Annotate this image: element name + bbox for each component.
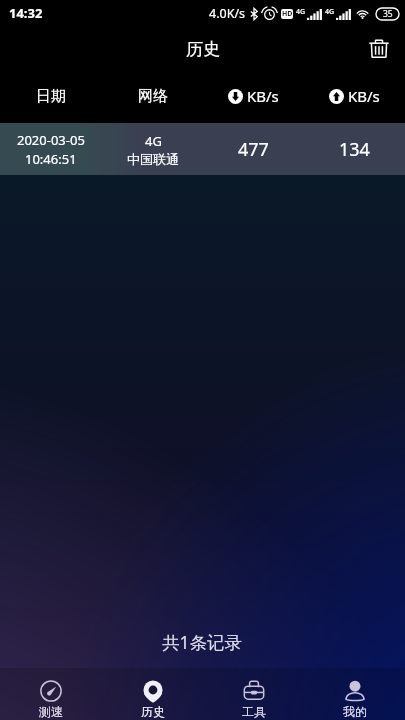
staticText: 4G xyxy=(325,7,335,17)
staticText: 35 xyxy=(383,8,393,20)
staticText: 134 xyxy=(339,137,370,162)
staticText: KB/s xyxy=(348,86,380,106)
staticText: 日期 xyxy=(36,87,66,106)
staticText: 测速 xyxy=(39,704,63,719)
staticText: 4.0K/s xyxy=(209,5,246,22)
staticText: 网络 xyxy=(138,87,168,106)
staticText: 中国联通 xyxy=(127,151,179,167)
button[interactable]: Clear history xyxy=(357,27,401,71)
staticText: 我的 xyxy=(343,704,367,719)
button[interactable]: 工具 xyxy=(203,668,304,720)
staticText: 4G xyxy=(296,7,306,17)
staticText: 4G xyxy=(145,132,162,150)
staticText: 共1条记录 xyxy=(162,630,243,654)
button[interactable]: 我的 xyxy=(304,668,405,720)
staticText: 2020-03-05 xyxy=(17,131,85,149)
staticText: KB/s xyxy=(247,86,279,106)
staticText: 10:46:51 xyxy=(25,150,77,168)
staticText: 14:32 xyxy=(9,4,43,22)
button[interactable]: 历史 xyxy=(102,668,203,720)
staticText: 477 xyxy=(238,137,269,162)
staticText: 历史 xyxy=(141,704,165,719)
button[interactable]: 测速 xyxy=(0,668,102,720)
staticText: 工具 xyxy=(242,704,266,719)
staticText: HD xyxy=(282,9,293,19)
button[interactable]: 2020-03-05 xyxy=(0,123,405,175)
staticText: 历史 xyxy=(186,39,220,60)
